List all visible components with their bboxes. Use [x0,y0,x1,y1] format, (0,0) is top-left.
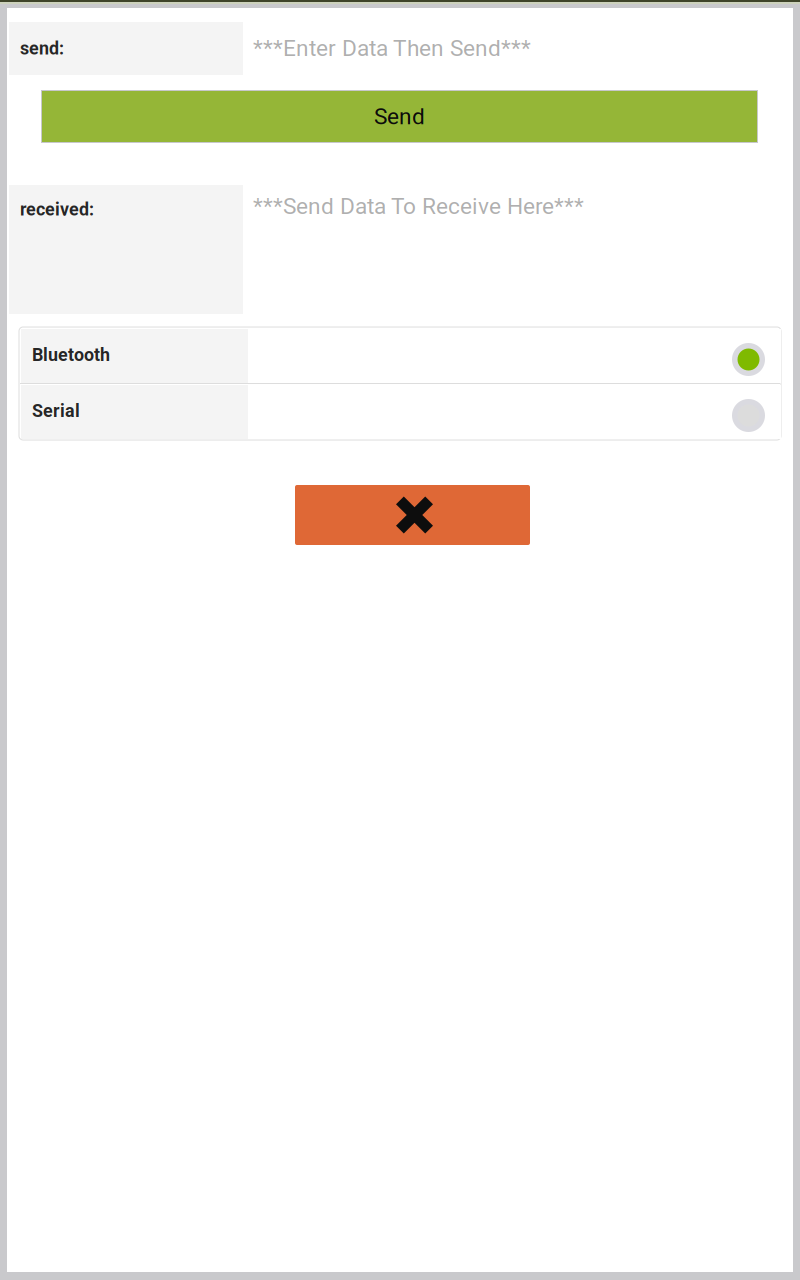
staticText: Serial [32,400,80,421]
button[interactable]: Serial [19,383,781,439]
button[interactable]: Bluetooth [19,327,781,383]
button[interactable]: Send [41,90,758,143]
staticText: send: [20,38,64,59]
staticText: Bluetooth [32,344,110,365]
staticText: Send [374,103,425,130]
staticText: ***Enter Data Then Send*** [253,35,531,62]
staticText: ***Send Data To Receive Here*** [253,193,584,220]
staticText: received: [20,199,94,220]
button[interactable]: Disconnect [295,485,530,545]
